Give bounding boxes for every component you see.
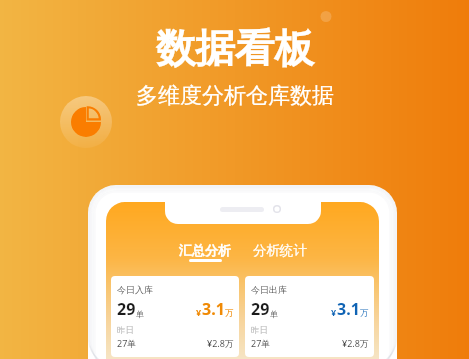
staticText: 3.1 <box>202 298 225 320</box>
staticText: 29 <box>117 298 136 320</box>
staticText: 多维度分析仓库数据 <box>136 82 334 110</box>
staticText: 汇总分析 <box>179 242 231 258</box>
button[interactable]: 今日入库 <box>111 276 239 357</box>
staticText: 今日出库 <box>251 284 287 295</box>
staticText: 27单 <box>251 337 271 349</box>
staticText: ¥2.8万 <box>207 337 234 349</box>
staticText: 昨日 <box>117 325 134 336</box>
button[interactable]: 今日出库 <box>245 276 374 357</box>
staticText: 29 <box>251 298 270 320</box>
button[interactable]: 数据看板图标 <box>60 96 112 148</box>
staticText: 今日入库 <box>117 284 153 295</box>
button[interactable]: 汇总分析 <box>179 242 231 262</box>
staticText: 万 <box>360 308 369 319</box>
button[interactable]: 分析统计 <box>253 242 307 263</box>
staticText: ¥ <box>331 306 337 318</box>
staticText: ¥2.8万 <box>342 337 369 349</box>
staticText: 万 <box>225 308 234 319</box>
staticText: 昨日 <box>251 325 268 336</box>
staticText: 数据看板 <box>156 24 314 74</box>
staticText: ¥ <box>196 306 202 318</box>
staticText: 单 <box>270 309 278 319</box>
staticText: 27单 <box>117 337 137 349</box>
staticText: 3.1 <box>337 298 360 320</box>
staticText: 单 <box>136 309 144 319</box>
staticText: 分析统计 <box>253 242 307 259</box>
